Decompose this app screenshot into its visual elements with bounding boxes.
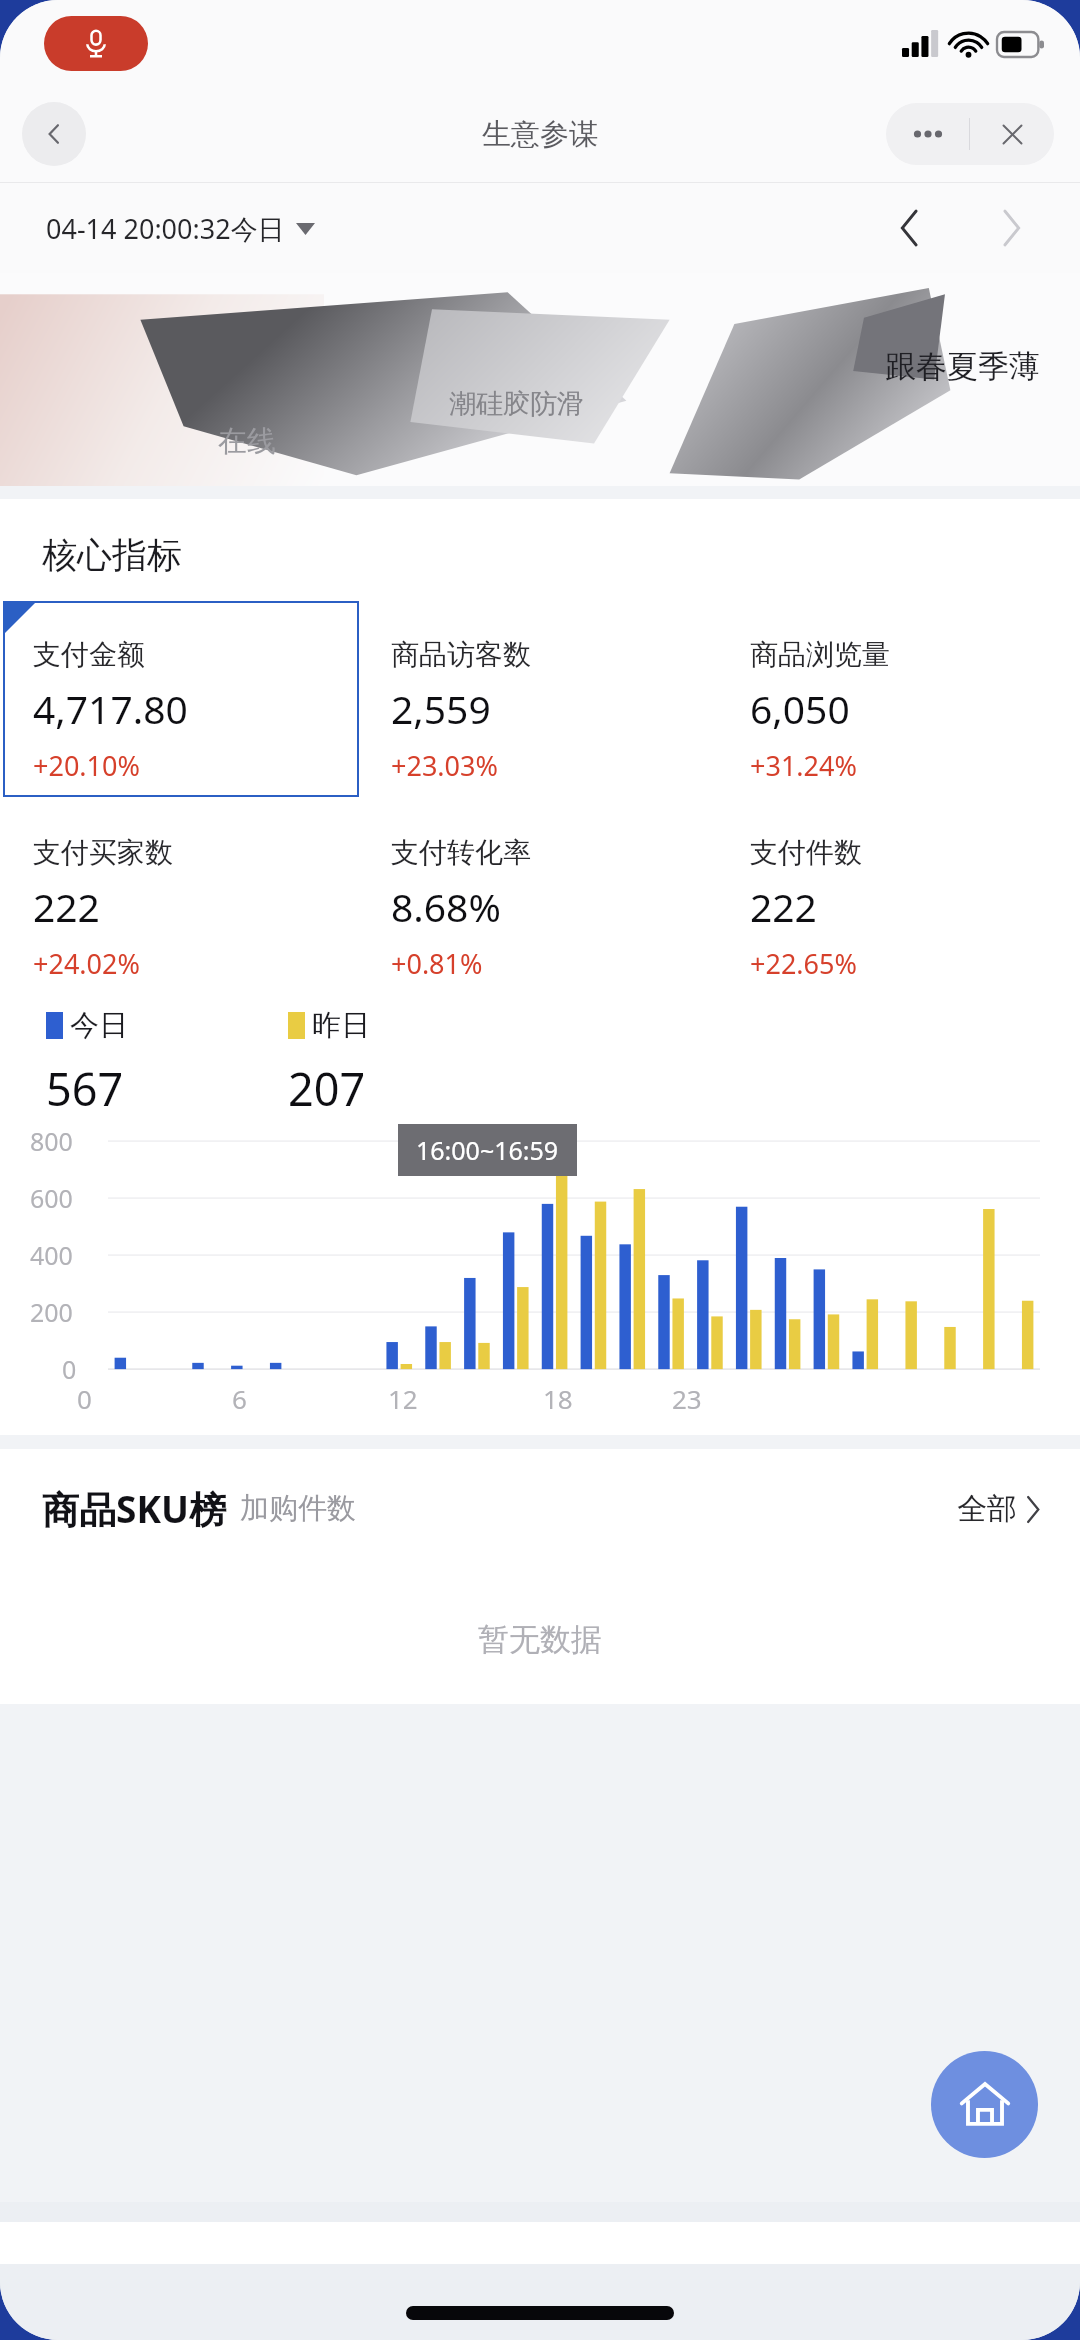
staticText: 16:00~16:59: [416, 1133, 559, 1167]
staticText: 23: [672, 1381, 702, 1416]
staticText: +23.03%: [391, 747, 498, 784]
staticText: 生意参谋: [482, 116, 598, 153]
staticText: 222: [33, 880, 100, 933]
button[interactable]: 商品访客数: [361, 601, 718, 797]
staticText: 04-14 20:00:32今日: [46, 210, 285, 247]
button[interactable]: 支付金额: [3, 601, 359, 797]
button[interactable]: 支付件数: [720, 799, 1077, 995]
staticText: 12: [388, 1381, 418, 1416]
button[interactable]: 昨日: [288, 1007, 370, 1044]
staticText: 2,559: [391, 682, 491, 735]
staticText: 18: [543, 1381, 573, 1416]
staticText: +22.65%: [750, 945, 857, 982]
staticText: 600: [30, 1181, 73, 1215]
staticText: 6,050: [750, 682, 850, 735]
staticText: 400: [30, 1238, 73, 1272]
button[interactable]: Previous day: [880, 199, 938, 257]
button[interactable]: Close: [970, 103, 1054, 165]
staticText: 0: [62, 1352, 77, 1386]
staticText: +31.24%: [750, 747, 857, 784]
staticText: 加购件数: [240, 1490, 356, 1527]
button[interactable]: Voice recording active: [44, 16, 148, 71]
button[interactable]: 今日: [46, 1007, 128, 1044]
staticText: 暂无数据: [478, 1620, 602, 1659]
staticText: 支付金额: [33, 637, 145, 672]
staticText: 全部: [957, 1490, 1017, 1528]
staticText: 商品SKU榜: [42, 1483, 226, 1534]
staticText: 商品浏览量: [750, 637, 890, 672]
staticText: 支付件数: [750, 835, 862, 870]
staticText: 200: [30, 1295, 73, 1329]
staticText: +0.81%: [391, 945, 483, 982]
staticText: 8.68%: [391, 880, 501, 933]
button[interactable]: 商品浏览量: [720, 601, 1077, 797]
staticText: 核心指标: [42, 533, 182, 577]
button[interactable]: 04-14 20:00:32今日: [46, 210, 315, 247]
button[interactable]: Next day: [982, 199, 1040, 257]
staticText: 今日: [70, 1007, 128, 1044]
button[interactable]: Home: [931, 2051, 1038, 2158]
staticText: 222: [750, 880, 817, 933]
staticText: 昨日: [312, 1007, 370, 1044]
button[interactable]: More options: [886, 103, 969, 165]
button[interactable]: 全部: [957, 1490, 1040, 1528]
staticText: 在线: [218, 423, 276, 460]
staticText: 6: [232, 1381, 247, 1416]
staticText: 800: [30, 1124, 73, 1158]
staticText: +20.10%: [33, 747, 140, 784]
staticText: 潮硅胶防滑: [449, 387, 584, 421]
staticText: 0: [77, 1381, 92, 1416]
staticText: 4,717.80: [33, 682, 188, 735]
staticText: +24.02%: [33, 945, 140, 982]
staticText: 商品访客数: [391, 637, 531, 672]
staticText: 跟春夏季薄: [885, 347, 1040, 386]
button[interactable]: Back: [22, 102, 86, 166]
button[interactable]: 支付买家数: [3, 799, 359, 995]
staticText: 支付买家数: [33, 835, 173, 870]
staticText: 支付转化率: [391, 835, 531, 870]
staticText: 567: [46, 1058, 124, 1119]
staticText: 207: [288, 1058, 366, 1119]
button[interactable]: 支付转化率: [361, 799, 718, 995]
